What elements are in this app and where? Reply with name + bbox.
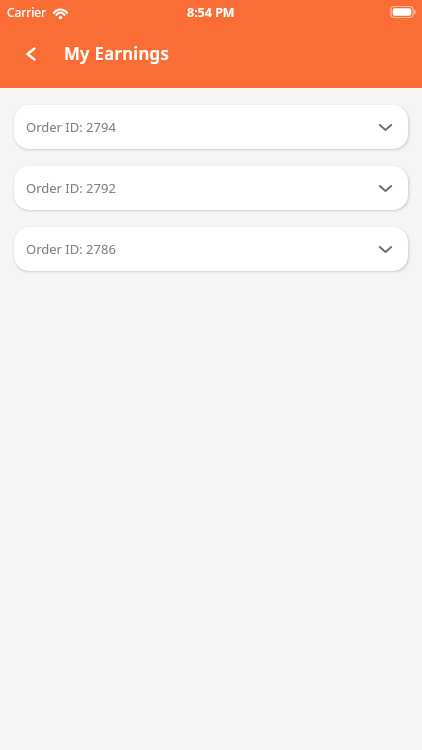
button[interactable]: Order ID: 2794 bbox=[14, 105, 408, 149]
staticText: 8:54 PM bbox=[187, 4, 235, 21]
button[interactable]: Order ID: 2786 bbox=[14, 227, 408, 271]
button[interactable]: Order ID: 2792 bbox=[14, 166, 408, 210]
staticText: Order ID: 2794 bbox=[26, 118, 116, 136]
staticText: Order ID: 2786 bbox=[26, 240, 116, 258]
button[interactable] bbox=[16, 39, 46, 69]
staticText: My Earnings bbox=[64, 42, 170, 65]
staticText: Order ID: 2792 bbox=[26, 179, 116, 197]
staticText: Carrier bbox=[7, 4, 47, 20]
